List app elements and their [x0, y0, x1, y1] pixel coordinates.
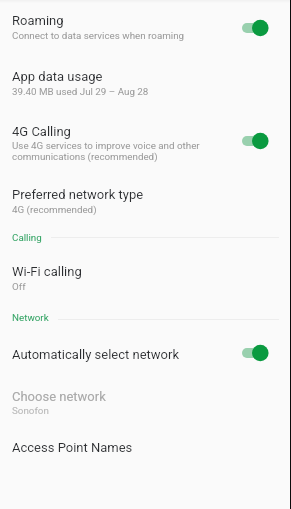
staticText: Connect to data services when roaming	[12, 30, 185, 41]
button[interactable]: Preferred network type	[0, 173, 291, 220]
staticText: 4G Calling	[12, 124, 71, 139]
button[interactable]: Automatically select network	[0, 333, 291, 375]
staticText: App data usage	[12, 69, 103, 84]
button[interactable]: Choose network	[0, 375, 291, 428]
button[interactable]: 4G Calling, on	[242, 131, 270, 151]
staticText: Calling	[12, 232, 42, 243]
button[interactable]: Access Point Names	[0, 428, 291, 488]
staticText: 39.40 MB used Jul 29 – Aug 28	[12, 86, 149, 97]
button[interactable]: Roaming, on	[242, 18, 270, 38]
button[interactable]: Wi-Fi calling	[0, 250, 291, 298]
staticText: Access Point Names	[12, 440, 133, 455]
staticText: 4G (recommended)	[12, 204, 97, 215]
button[interactable]: Roaming	[0, 0, 291, 55]
staticText: Network	[12, 312, 49, 323]
button[interactable]: Automatically select network, on	[242, 343, 270, 363]
staticText: Use 4G services to improve voice and oth…	[12, 140, 200, 162]
staticText: Roaming	[12, 13, 64, 28]
staticText: Sonofon	[12, 405, 49, 416]
button[interactable]: 4G Calling	[0, 109, 291, 173]
button[interactable]: App data usage	[0, 55, 291, 109]
staticText: Preferred network type	[12, 187, 144, 202]
staticText: Choose network	[12, 389, 106, 404]
staticText: Off	[12, 281, 26, 292]
staticText: Automatically select network	[12, 347, 180, 362]
staticText: Wi-Fi calling	[12, 264, 82, 279]
